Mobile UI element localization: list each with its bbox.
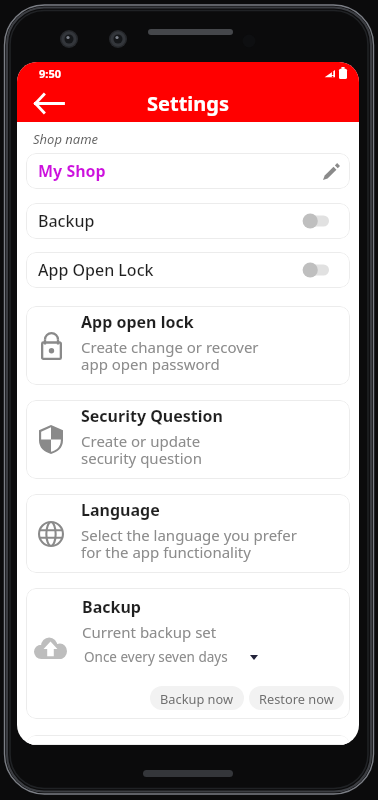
staticText: 9:50 (39, 66, 61, 81)
button[interactable]: App Open Lock (26, 252, 350, 288)
staticText: Settings (147, 90, 229, 117)
staticText: My Shop (38, 160, 314, 182)
staticText: Create change or recover app open passwo… (81, 337, 259, 375)
button[interactable]: Edit shop name (318, 158, 344, 184)
button[interactable]: Backup (26, 203, 350, 239)
staticText: Create or update security question (81, 431, 202, 469)
staticText: Current backup set (82, 622, 217, 642)
staticText: App open lock (81, 311, 194, 333)
staticText: Shop name (33, 130, 99, 148)
button[interactable]: Back (30, 84, 68, 122)
staticText: Select the language you prefer for the a… (81, 525, 297, 563)
staticText: Security Question (81, 405, 223, 427)
button[interactable]: Language (26, 494, 350, 573)
button[interactable]: App open lock (26, 306, 350, 385)
staticText: Backup now (160, 690, 234, 707)
staticText: App Open Lock (38, 259, 303, 281)
staticText: Backup (82, 596, 141, 618)
staticText: Once every seven days (84, 648, 228, 666)
staticText: Language (81, 499, 160, 521)
button[interactable]: Security Question (26, 400, 350, 479)
button[interactable]: Restore now (249, 686, 344, 710)
button[interactable]: Backup now (150, 686, 244, 710)
staticText: Backup (38, 210, 303, 232)
staticText: Restore now (259, 690, 334, 707)
